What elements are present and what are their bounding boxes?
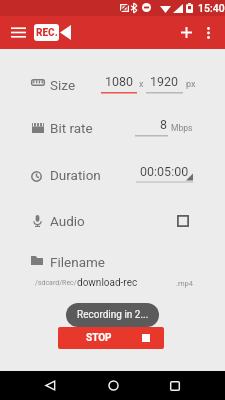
button[interactable]: Recents [160, 371, 190, 400]
staticText: Filename [50, 254, 105, 270]
staticText: Bit rate [50, 120, 93, 136]
staticText: Duration [50, 167, 101, 183]
staticText: 15:40 [198, 2, 225, 14]
staticText: REC. [36, 27, 58, 39]
staticText: Size [50, 77, 76, 93]
button[interactable]: Audio checkbox [177, 215, 189, 227]
staticText: .mp4 [176, 279, 193, 288]
staticText: x [139, 79, 144, 90]
staticText: /sdcard/Rec/ [35, 279, 77, 287]
button[interactable]: Back [35, 371, 65, 400]
staticText: Audio [50, 213, 85, 229]
staticText: download-rec [77, 277, 138, 289]
staticText: 00:05:00 [140, 164, 189, 179]
button[interactable]: More options [193, 17, 224, 48]
staticText: STOP [86, 332, 112, 344]
button[interactable]: Add [171, 17, 202, 48]
staticText: Mbps [171, 123, 193, 133]
button[interactable]: Navigation menu [3, 17, 34, 48]
button[interactable]: STOP [58, 327, 164, 349]
staticText: 1080 [105, 74, 134, 89]
staticText: Recording in 2... [77, 309, 149, 321]
staticText: px [186, 79, 196, 90]
staticText: 1920 [150, 74, 179, 89]
staticText: 8 [160, 117, 168, 132]
button[interactable]: Home [98, 371, 128, 400]
